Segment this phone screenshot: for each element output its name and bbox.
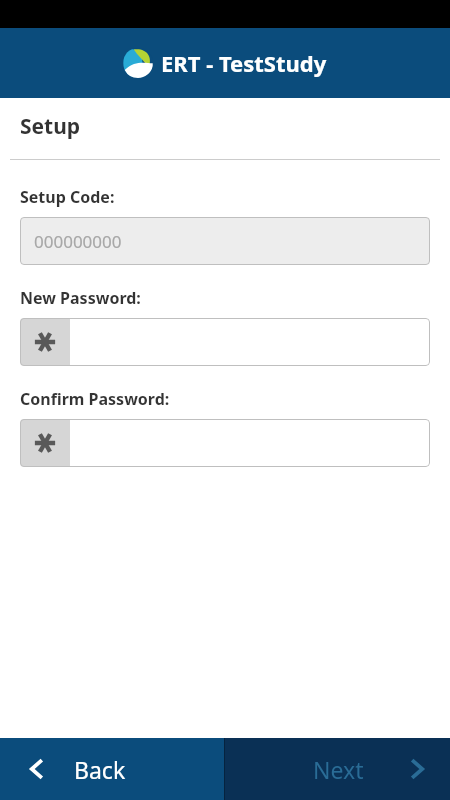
staticText: Setup Code: bbox=[20, 186, 115, 208]
staticText: Back bbox=[74, 754, 126, 785]
staticText: New Password: bbox=[20, 287, 141, 309]
other: Next bbox=[406, 758, 428, 780]
button[interactable]: Next bbox=[225, 738, 450, 800]
button[interactable]: 000000000 bbox=[20, 217, 430, 265]
other: Back bbox=[26, 758, 48, 780]
staticText: Confirm Password: bbox=[20, 388, 170, 410]
button[interactable]: Password bbox=[20, 318, 430, 366]
button[interactable]: Back bbox=[0, 738, 224, 800]
other: ERT logo bbox=[123, 48, 153, 78]
staticText: Setup bbox=[20, 112, 81, 141]
staticText: 000000000 bbox=[34, 230, 122, 253]
staticText: ERT - TestStudy bbox=[161, 48, 327, 78]
staticText: Next bbox=[313, 754, 364, 785]
other: Password bbox=[34, 331, 56, 353]
other: Password bbox=[34, 432, 56, 454]
button[interactable]: Password bbox=[20, 419, 430, 467]
